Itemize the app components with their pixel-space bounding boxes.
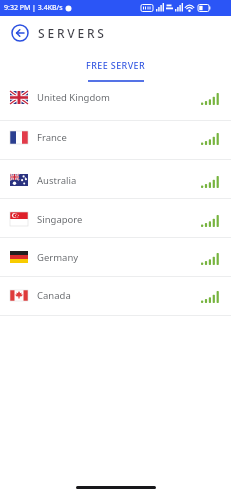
staticText: Canada — [37, 289, 71, 302]
staticText: United Kingdom — [37, 91, 110, 104]
button[interactable]: Germany — [0, 238, 231, 277]
button[interactable]: FREE SERVER — [0, 50, 231, 82]
staticText: Singapore — [37, 213, 83, 226]
button[interactable]: Canada — [0, 277, 231, 316]
button[interactable]: France — [0, 121, 231, 160]
staticText: 9:32 PM | 3.4KB/s — [4, 3, 63, 13]
button[interactable]: Australia — [0, 160, 231, 199]
staticText: Germany — [37, 251, 79, 264]
staticText: France — [37, 131, 67, 144]
button[interactable] — [10, 23, 30, 43]
button[interactable]: United Kingdom — [0, 82, 231, 121]
staticText: SERVERS — [38, 25, 107, 41]
button[interactable]: Singapore — [0, 199, 231, 238]
staticText: Australia — [37, 174, 77, 187]
staticText: FREE SERVER — [86, 59, 146, 71]
